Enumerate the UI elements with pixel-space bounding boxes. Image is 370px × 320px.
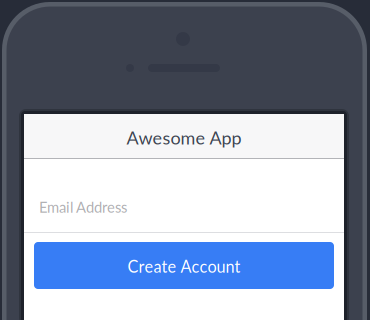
staticText: Create Account	[127, 257, 240, 276]
button[interactable]: Create Account	[34, 242, 334, 289]
button[interactable]: Email Address	[24, 159, 344, 232]
staticText: Email Address	[39, 198, 127, 216]
staticText: Awesome App	[126, 127, 241, 148]
